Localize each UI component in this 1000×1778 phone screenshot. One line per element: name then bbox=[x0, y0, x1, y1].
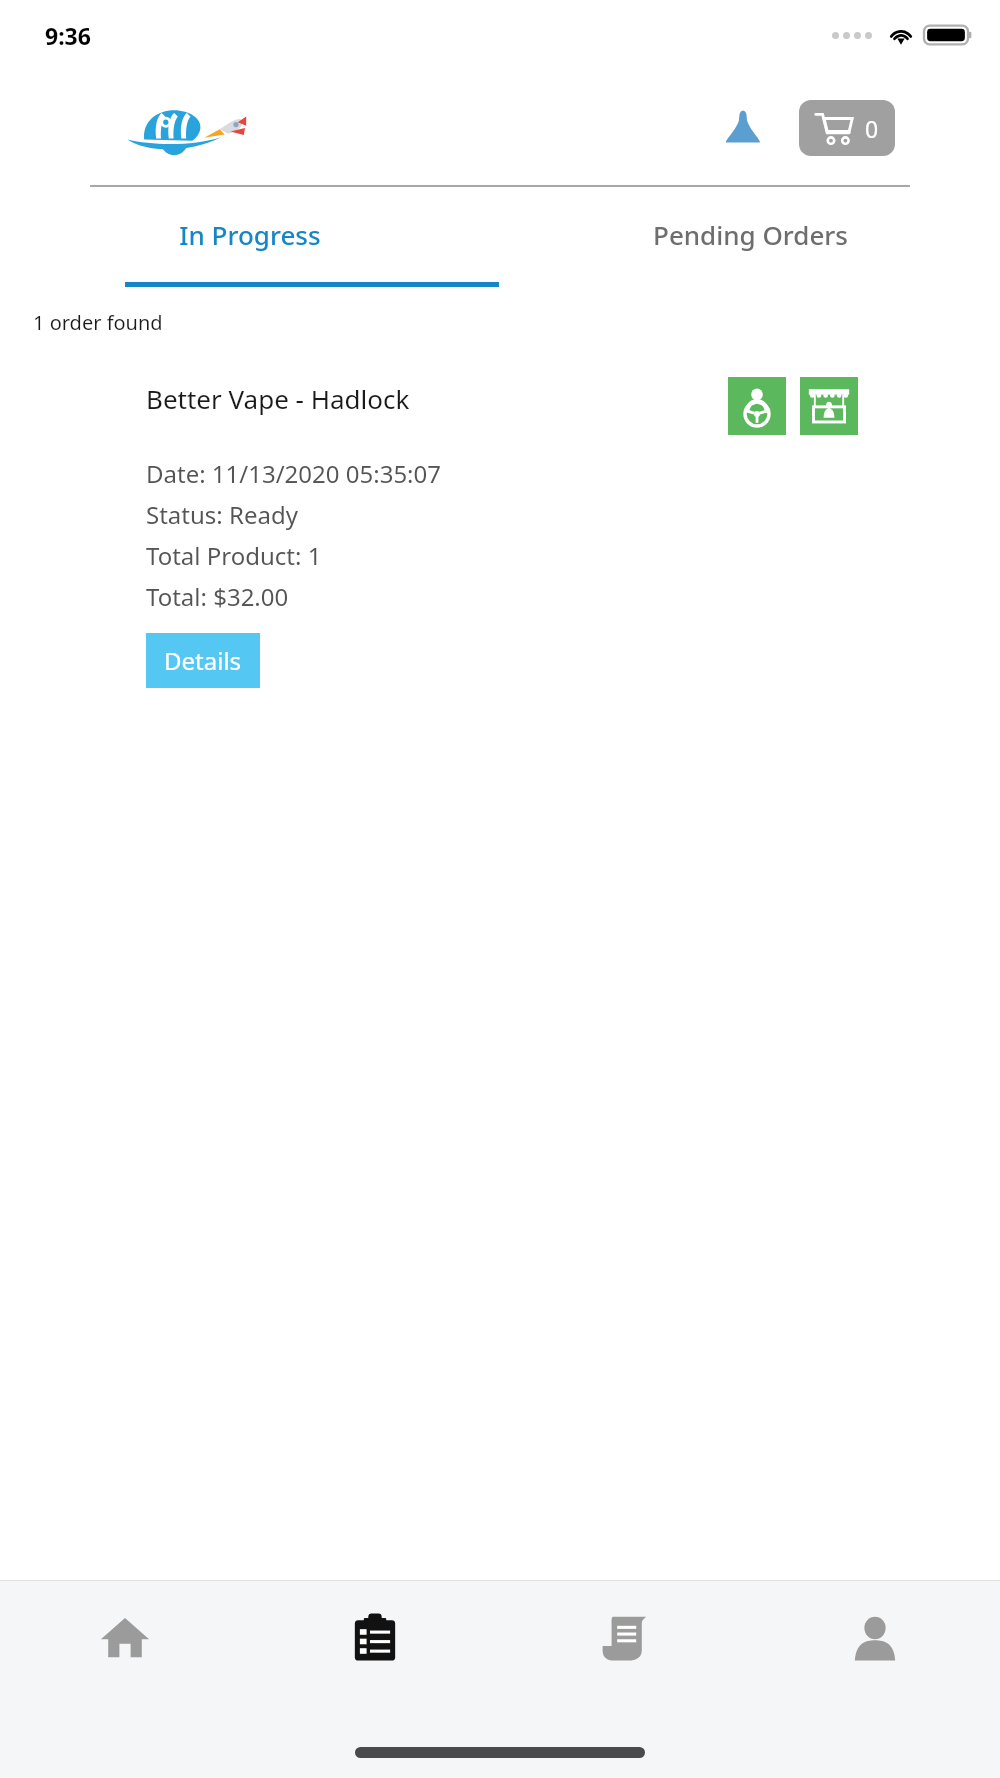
staticText: Status: Ready bbox=[146, 498, 298, 531]
staticText: 9:36 bbox=[45, 20, 91, 51]
button[interactable]: Pending Orders bbox=[500, 187, 1000, 282]
button[interactable]: Notifications bbox=[719, 104, 767, 152]
staticText: Better Vape - Hadlock bbox=[146, 381, 728, 416]
button[interactable]: Delivery driver bbox=[728, 377, 786, 435]
staticText: Details bbox=[164, 644, 242, 677]
button[interactable]: Orders bbox=[250, 1609, 500, 1704]
staticText: In Progress bbox=[179, 217, 321, 252]
staticText: Total Product: 1 bbox=[146, 539, 322, 572]
button[interactable]: Store pickup bbox=[800, 377, 858, 435]
staticText: Date: 11/13/2020 05:35:07 bbox=[146, 457, 442, 490]
button[interactable]: Receipts bbox=[500, 1609, 750, 1704]
staticText: 0 bbox=[865, 113, 879, 144]
staticText: Total: $32.00 bbox=[146, 580, 289, 613]
staticText: 1 order found bbox=[33, 309, 163, 336]
button[interactable]: Logo bbox=[125, 99, 245, 157]
button[interactable]: 0 bbox=[799, 100, 895, 156]
staticText: Pending Orders bbox=[653, 217, 848, 252]
button[interactable]: Details bbox=[146, 633, 260, 688]
button[interactable]: Home bbox=[0, 1609, 250, 1704]
button[interactable]: Profile bbox=[750, 1609, 1000, 1704]
button[interactable]: Better Vape - Hadlock bbox=[126, 355, 874, 708]
button[interactable]: In Progress bbox=[0, 187, 500, 282]
